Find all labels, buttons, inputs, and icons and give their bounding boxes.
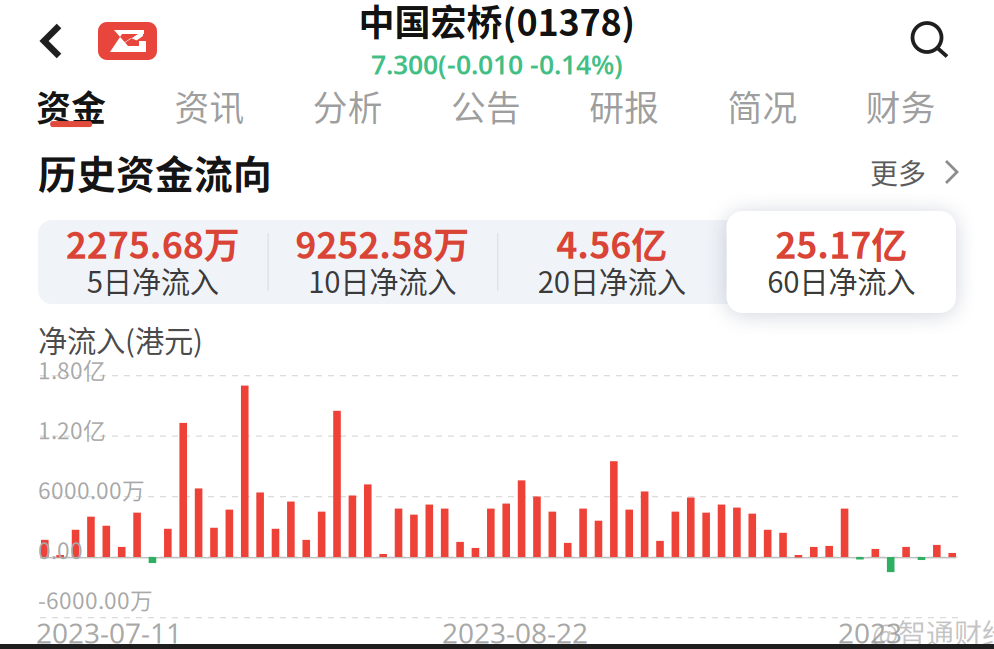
staticText: 历史资金流向 <box>38 144 272 200</box>
button[interactable]: 更多 <box>870 152 960 192</box>
button[interactable]: 25.17亿 <box>726 211 956 313</box>
staticText: 60日净流入 <box>767 259 915 301</box>
staticText: 简况 <box>728 81 798 131</box>
staticText: 净流入(港元) <box>38 318 203 360</box>
staticText: 6000.00万 <box>38 473 145 506</box>
staticText: 4.56亿 <box>556 217 667 269</box>
staticText: 财务 <box>866 81 936 131</box>
button[interactable]: 公告 <box>417 81 555 137</box>
button[interactable]: Zhitong Finance <box>98 14 157 68</box>
button[interactable]: 2275.68万 <box>38 211 267 313</box>
button[interactable]: 分析 <box>279 81 417 137</box>
staticText: 7.300(-0.010 -0.14%) <box>371 46 623 82</box>
staticText: 公告 <box>451 81 521 131</box>
staticText: 1.20亿 <box>38 413 106 446</box>
staticText: 分析 <box>313 81 383 131</box>
button[interactable]: Search <box>893 10 994 71</box>
staticText: 2275.68万 <box>66 217 240 269</box>
staticText: 25.17亿 <box>775 217 907 269</box>
staticText: -6000.00万 <box>38 583 153 616</box>
button[interactable]: Back <box>0 13 98 69</box>
staticText: 0.00 <box>38 533 83 566</box>
staticText: 2023-08-22 <box>442 614 588 649</box>
button[interactable]: 财务 <box>832 81 970 137</box>
staticText: 20日净流入 <box>538 259 686 301</box>
button[interactable]: 资讯 <box>140 81 279 137</box>
staticText: 2023-07-11 <box>36 614 182 649</box>
staticText: 研报 <box>589 81 659 131</box>
button[interactable]: 9252.58万 <box>267 211 497 313</box>
staticText: 资讯 <box>174 81 244 131</box>
button[interactable]: 4.56亿 <box>497 211 726 313</box>
staticText: 10日净流入 <box>308 259 456 301</box>
staticText: 5日净流入 <box>87 259 219 301</box>
staticText: 2023 <box>838 614 902 649</box>
staticText: 资金 <box>36 81 106 131</box>
staticText: @智通财经APP <box>872 612 994 649</box>
button[interactable]: 简况 <box>693 81 832 137</box>
staticText: 更多 <box>870 152 926 192</box>
button[interactable]: 研报 <box>555 81 693 137</box>
button[interactable]: 资金 <box>2 81 140 137</box>
staticText: 1.80亿 <box>38 353 106 386</box>
staticText: 中国宏桥(01378) <box>358 0 635 46</box>
staticText: 9252.58万 <box>295 217 469 269</box>
